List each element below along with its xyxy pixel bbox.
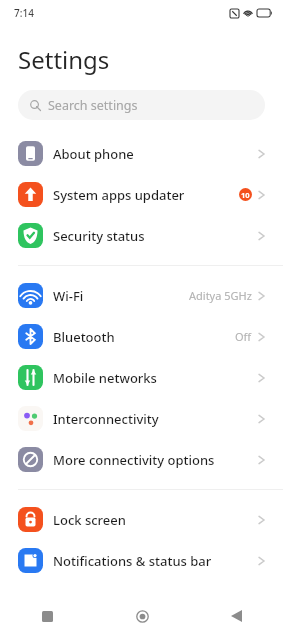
staticText: Lock screen (53, 511, 258, 529)
staticText: Aditya 5GHz (189, 288, 252, 303)
staticText: Settings (18, 43, 110, 76)
button[interactable]: About phone (0, 133, 283, 174)
staticText: 10 (241, 190, 250, 200)
button[interactable]: More connectivity options (0, 439, 283, 480)
button[interactable]: Back (189, 602, 283, 630)
staticText: 7:14 (14, 6, 34, 20)
staticText: Search settings (48, 97, 138, 114)
staticText: Wi-Fi (53, 287, 189, 305)
button[interactable]: Search settings (18, 90, 265, 120)
staticText: Bluetooth (53, 328, 235, 346)
button[interactable]: Wi-Fi (0, 275, 283, 316)
button[interactable]: Interconnectivity (0, 398, 283, 439)
staticText: More connectivity options (53, 451, 258, 469)
staticText: About phone (53, 145, 258, 163)
button[interactable]: Notifications & status bar (0, 540, 283, 581)
button[interactable]: System apps updater (0, 174, 283, 215)
button[interactable]: Recent apps (0, 602, 95, 630)
staticText: Off (235, 329, 252, 344)
button[interactable]: Bluetooth (0, 316, 283, 357)
button[interactable]: Home (95, 602, 189, 630)
staticText: Interconnectivity (53, 410, 258, 428)
button[interactable]: Lock screen (0, 499, 283, 540)
staticText: Notifications & status bar (53, 552, 258, 570)
staticText: System apps updater (53, 186, 239, 204)
staticText: Mobile networks (53, 369, 258, 387)
button[interactable]: Security status (0, 215, 283, 256)
button[interactable]: Mobile networks (0, 357, 283, 398)
staticText: Security status (53, 227, 258, 245)
